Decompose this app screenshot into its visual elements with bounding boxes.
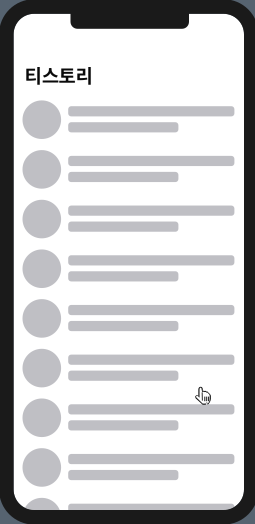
staticText: 티스토리 [25,61,93,88]
button[interactable]: Loading post 2 [14,150,244,189]
button[interactable]: Loading post 1 [14,100,244,139]
button[interactable]: Loading post 4 [14,249,244,288]
button[interactable]: Loading post 7 [14,398,244,437]
button[interactable]: Loading post 8 [14,448,244,487]
button[interactable]: Loading post 6 [14,349,244,387]
button[interactable]: Loading post 5 [14,299,244,338]
button[interactable]: Loading post 9 [14,498,244,524]
button[interactable]: Loading post 3 [14,200,244,238]
